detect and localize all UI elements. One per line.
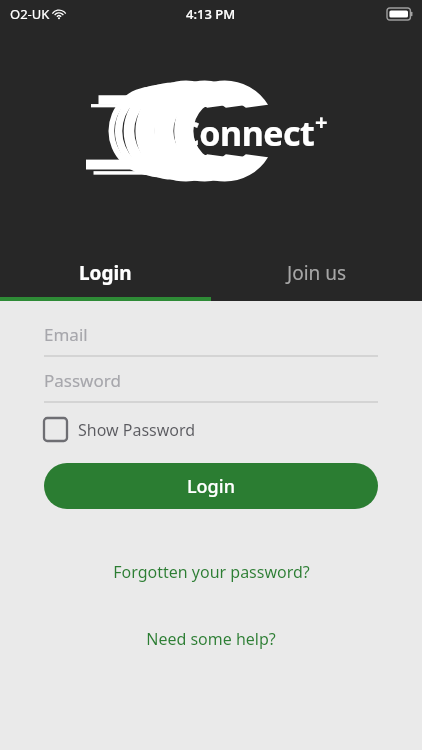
staticText: Email [44,323,88,346]
button[interactable]: Login [0,249,211,297]
staticText: Join us [287,260,347,286]
button[interactable]: Login [44,463,378,509]
button[interactable]: Forgotten your password? [0,556,422,588]
button[interactable]: Need some help? [0,623,422,655]
staticText: Show Password [78,419,196,441]
button[interactable]: Show Password [44,414,206,445]
staticText: Forgotten your password? [113,561,310,583]
staticText: 4:13 PM [186,5,236,23]
staticText: Login [79,260,132,286]
button[interactable]: Join us [211,249,422,297]
staticText: Login [187,474,235,499]
staticText: O2-UK [10,5,50,23]
button[interactable]: Password [44,359,378,403]
staticText: Need some help? [146,628,276,650]
staticText: + [315,106,328,136]
staticText: Connect [178,110,315,156]
staticText: Password [44,369,121,392]
button[interactable]: Email [44,313,378,357]
